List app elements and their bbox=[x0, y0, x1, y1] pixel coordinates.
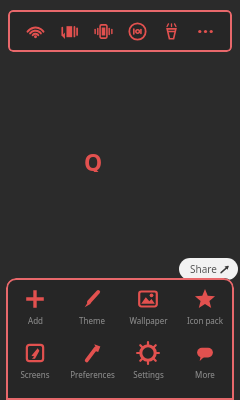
button[interactable]: Icon pack bbox=[177, 286, 233, 334]
staticText: Theme bbox=[79, 315, 105, 326]
button[interactable]: Flashlight bbox=[158, 18, 184, 44]
button[interactable]: Vibrate bbox=[90, 18, 116, 44]
button[interactable]: Wi-Fi bbox=[22, 18, 48, 44]
button[interactable]: Preferences bbox=[64, 340, 120, 388]
button[interactable]: Wallpaper bbox=[120, 286, 176, 334]
button[interactable]: Screen timeout 30 seconds bbox=[124, 18, 150, 44]
button[interactable]: Add bbox=[7, 286, 63, 334]
button[interactable]: More bbox=[177, 340, 233, 388]
staticText: Icon pack bbox=[187, 315, 223, 326]
staticText: Wallpaper bbox=[129, 315, 168, 326]
button[interactable]: Theme bbox=[64, 286, 120, 334]
button[interactable]: Screens bbox=[7, 340, 63, 388]
button[interactable]: More options bbox=[192, 18, 218, 44]
button[interactable]: Settings bbox=[120, 340, 176, 388]
staticText: Add bbox=[28, 315, 43, 326]
button[interactable]: Q logo bbox=[80, 146, 106, 172]
staticText: Settings bbox=[133, 369, 164, 380]
staticText: Share bbox=[190, 262, 217, 276]
staticText: Screens bbox=[20, 369, 50, 380]
staticText: Q bbox=[84, 146, 103, 172]
staticText: Preferences bbox=[70, 369, 115, 380]
staticText: More bbox=[195, 369, 215, 380]
button[interactable]: Volume bbox=[56, 18, 82, 44]
button[interactable]: Share bbox=[179, 258, 238, 280]
